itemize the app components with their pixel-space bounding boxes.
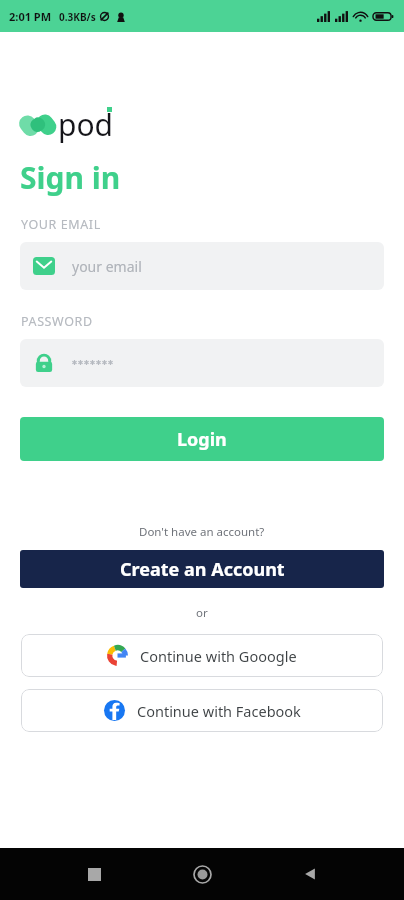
button[interactable]: your email <box>20 242 384 290</box>
button[interactable]: Home <box>182 854 222 894</box>
button[interactable]: Create an Account <box>20 550 384 588</box>
staticText: PASSWORD <box>21 313 93 330</box>
button[interactable]: Login <box>20 417 384 461</box>
button[interactable]: Back <box>290 854 330 894</box>
staticText: or <box>196 605 208 621</box>
staticText: your email <box>72 257 142 276</box>
staticText: 2:01 PM <box>9 9 52 24</box>
staticText: Sign in <box>20 157 121 198</box>
button[interactable]: Continue with Gooogle <box>21 634 383 677</box>
button[interactable]: Continue with Facebook <box>21 689 383 732</box>
staticText: Continue with Facebook <box>137 701 301 721</box>
button[interactable]: Recent apps <box>74 854 114 894</box>
staticText: YOUR EMAIL <box>21 216 101 233</box>
staticText: Login <box>177 427 227 452</box>
staticText: pod <box>58 104 114 145</box>
staticText: 0.3KB/s <box>59 10 96 24</box>
staticText: Create an Account <box>120 557 285 582</box>
staticText: Continue with Gooogle <box>140 646 297 666</box>
staticText: Don't have an account? <box>139 524 265 540</box>
button[interactable] <box>20 339 384 387</box>
